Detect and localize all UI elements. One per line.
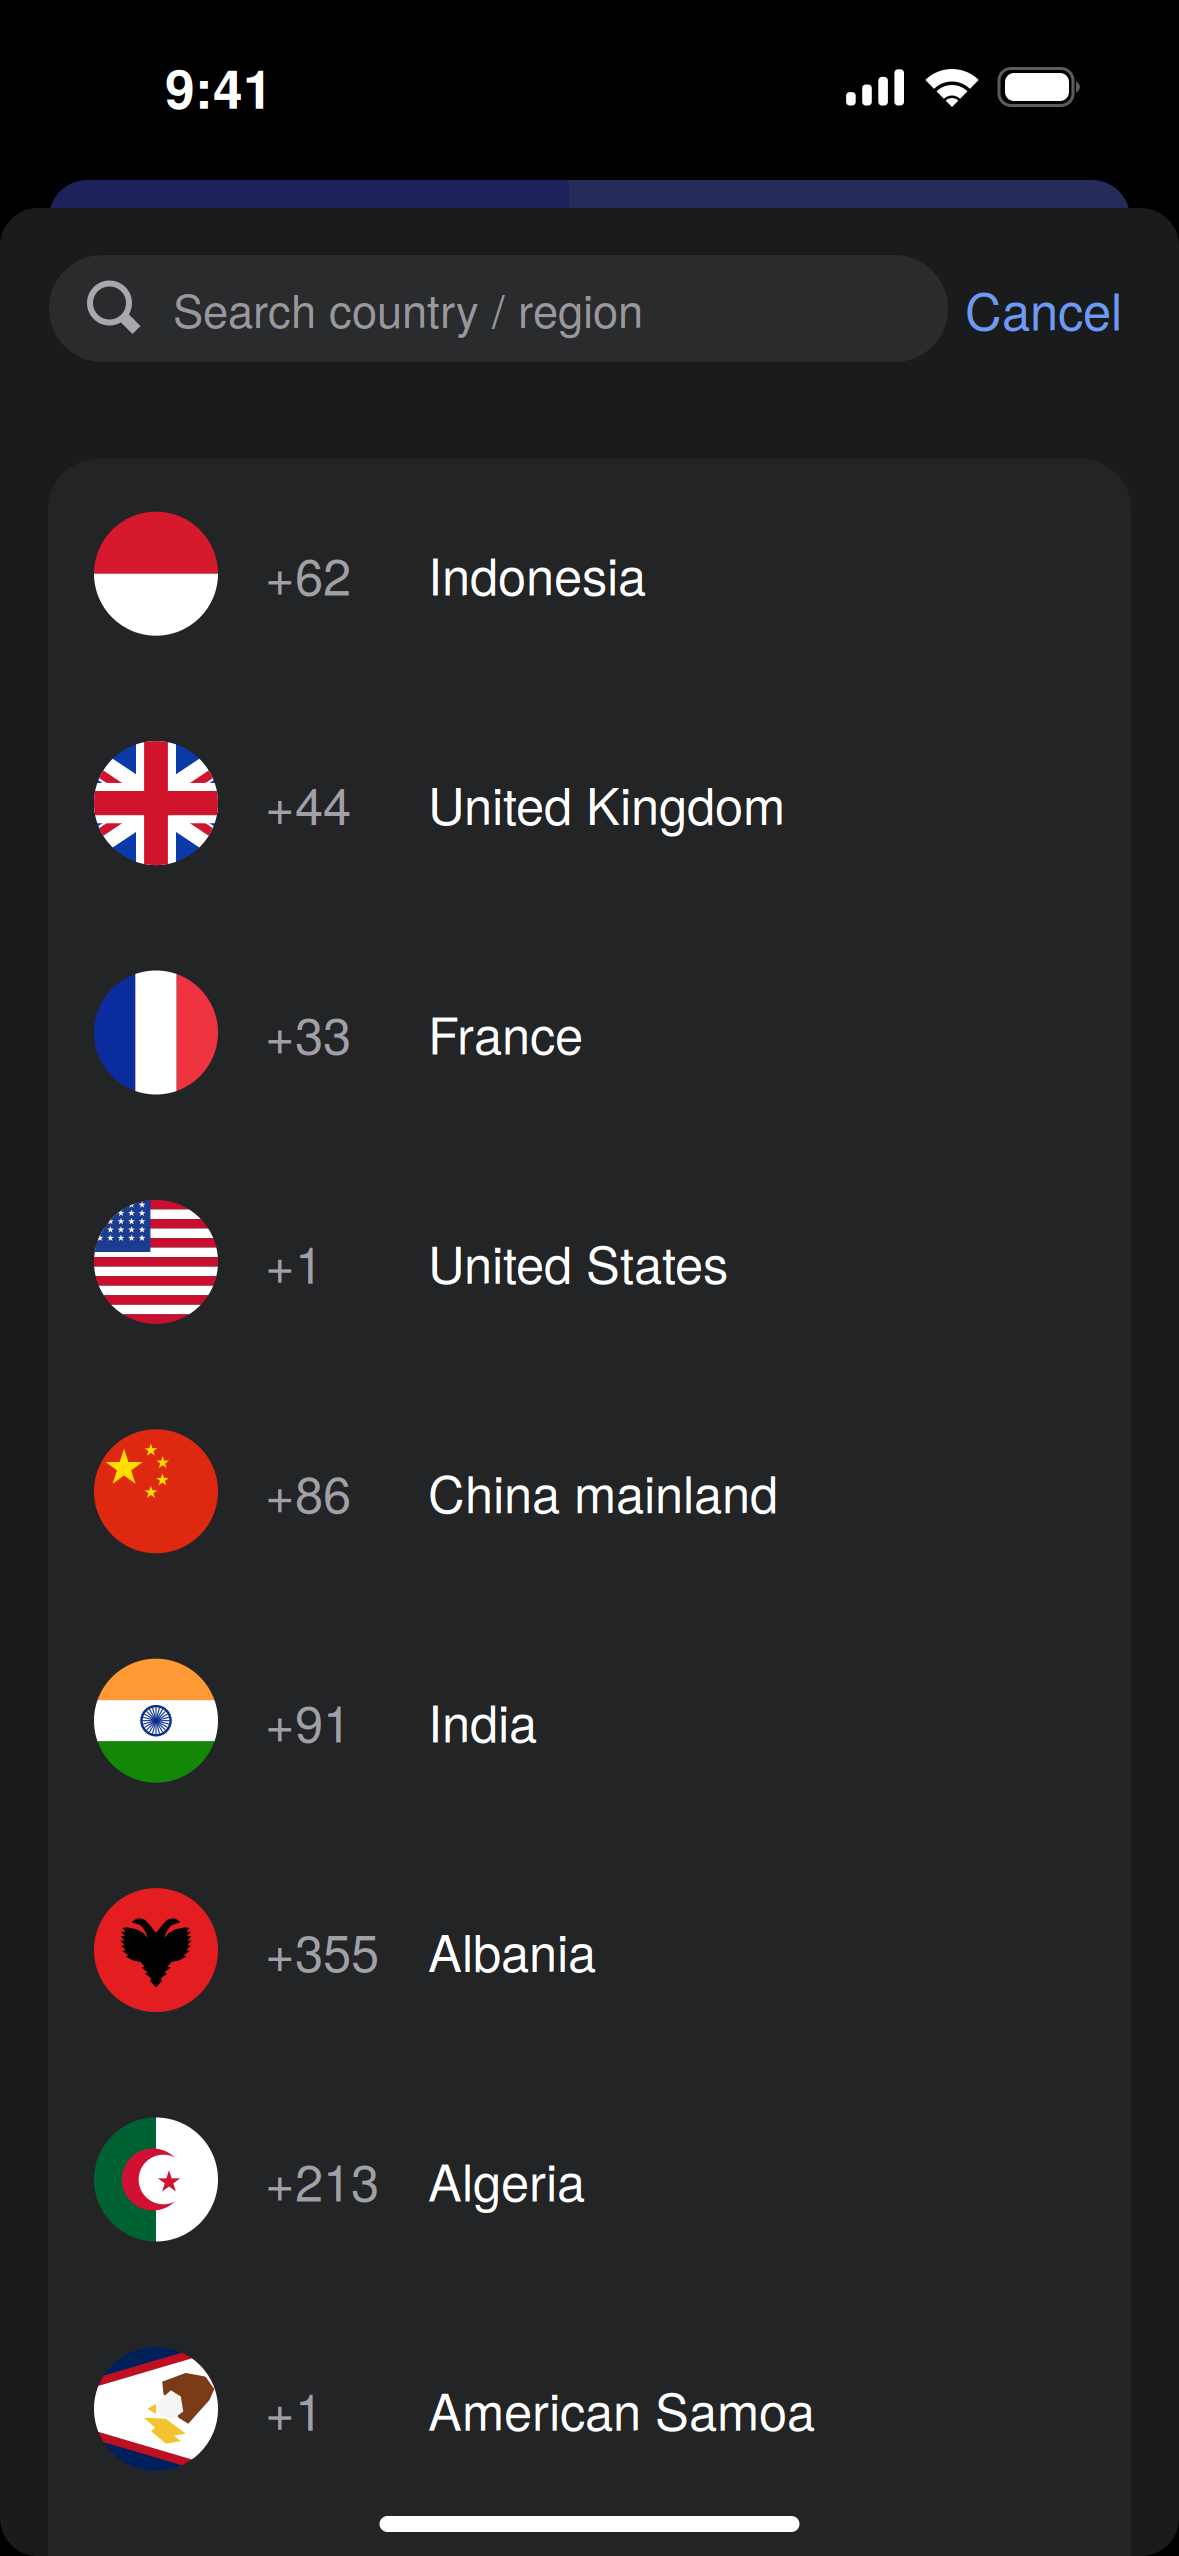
staticText: American Samoa bbox=[428, 2373, 815, 2445]
staticText: United Kingdom bbox=[428, 767, 785, 839]
staticText: +91 bbox=[265, 1684, 351, 1757]
button[interactable]: +33 bbox=[48, 918, 1131, 1147]
staticText: 9:41 bbox=[165, 49, 273, 125]
staticText: +33 bbox=[265, 996, 351, 1069]
button[interactable]: +355 bbox=[48, 1835, 1131, 2065]
staticText: France bbox=[428, 996, 583, 1069]
button[interactable]: +213 bbox=[48, 2065, 1131, 2294]
staticText: Cancel bbox=[965, 272, 1122, 345]
staticText: +1 bbox=[265, 2373, 323, 2445]
staticText: +62 bbox=[265, 537, 351, 610]
staticText: +355 bbox=[265, 1914, 379, 1986]
staticText: United States bbox=[428, 1226, 728, 1298]
staticText: India bbox=[428, 1684, 537, 1757]
staticText: +86 bbox=[265, 1455, 351, 1528]
button[interactable]: +1 bbox=[48, 2294, 1131, 2524]
staticText: Search country / region bbox=[173, 276, 643, 341]
button[interactable]: +1 bbox=[48, 1147, 1131, 1377]
staticText: +213 bbox=[265, 2143, 379, 2216]
button[interactable]: +91 bbox=[48, 1606, 1131, 1835]
staticText: Albania bbox=[428, 1914, 596, 1986]
button[interactable]: +62 bbox=[48, 459, 1131, 688]
staticText: China mainland bbox=[428, 1455, 778, 1528]
button[interactable]: +86 bbox=[48, 1377, 1131, 1606]
button[interactable]: +44 bbox=[48, 688, 1131, 918]
staticText: +44 bbox=[265, 767, 351, 839]
staticText: Indonesia bbox=[428, 537, 646, 610]
staticText: Algeria bbox=[428, 2143, 585, 2216]
button[interactable]: Cancel bbox=[948, 255, 1131, 362]
staticText: +1 bbox=[265, 1226, 323, 1298]
